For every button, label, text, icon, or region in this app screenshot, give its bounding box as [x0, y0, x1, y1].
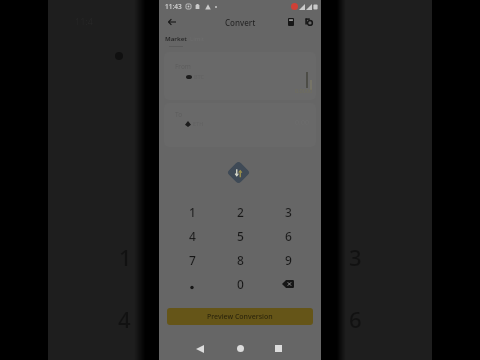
button[interactable]: Swap currencies [226, 160, 250, 184]
staticText: Market [165, 35, 187, 43]
staticText: 11:43 [165, 2, 182, 11]
button[interactable] [168, 272, 216, 296]
staticText: 9 [285, 252, 292, 268]
staticText: 0 [237, 276, 244, 292]
button[interactable]: 6 [264, 224, 312, 248]
button[interactable]: 7 [168, 248, 216, 272]
staticText: 2 [237, 204, 244, 220]
button[interactable]: 1 [168, 200, 216, 224]
button[interactable]: Back [190, 339, 209, 358]
staticText: Convert [225, 17, 256, 28]
button[interactable]: History [301, 14, 316, 29]
button[interactable]: Recent apps [269, 339, 288, 358]
button[interactable]: 8 [216, 248, 264, 272]
button[interactable]: To [164, 103, 316, 147]
staticText: 1 [189, 204, 196, 220]
button[interactable]: 2 [216, 200, 264, 224]
staticText: 7 [189, 252, 196, 268]
staticText: 0.0000 [295, 87, 313, 94]
button[interactable]: Market [164, 34, 188, 44]
staticText: 8 [237, 252, 244, 268]
staticText: 3 [349, 242, 362, 272]
staticText: Preview Conversion [207, 312, 273, 322]
staticText: 6 [285, 228, 292, 244]
button[interactable]: 3 [264, 200, 312, 224]
button[interactable]: Preview Conversion [167, 308, 313, 325]
button[interactable]: 4 [168, 224, 216, 248]
staticText: 5 [237, 228, 244, 244]
staticText: 4 [118, 304, 131, 334]
staticText: 4 [189, 228, 196, 244]
staticText: 6 [349, 304, 362, 334]
staticText: 3 [285, 204, 292, 220]
button[interactable]: 5 [216, 224, 264, 248]
staticText: 1 [119, 242, 132, 272]
other: Backspace [278, 274, 298, 294]
button[interactable]: 0 [216, 272, 264, 296]
button[interactable]: Calculator [283, 14, 298, 29]
button[interactable]: From [164, 52, 316, 100]
button[interactable]: Back [164, 14, 179, 29]
button[interactable]: Backspace [264, 272, 312, 296]
button[interactable]: Home [231, 339, 250, 358]
button[interactable]: 9 [264, 248, 312, 272]
